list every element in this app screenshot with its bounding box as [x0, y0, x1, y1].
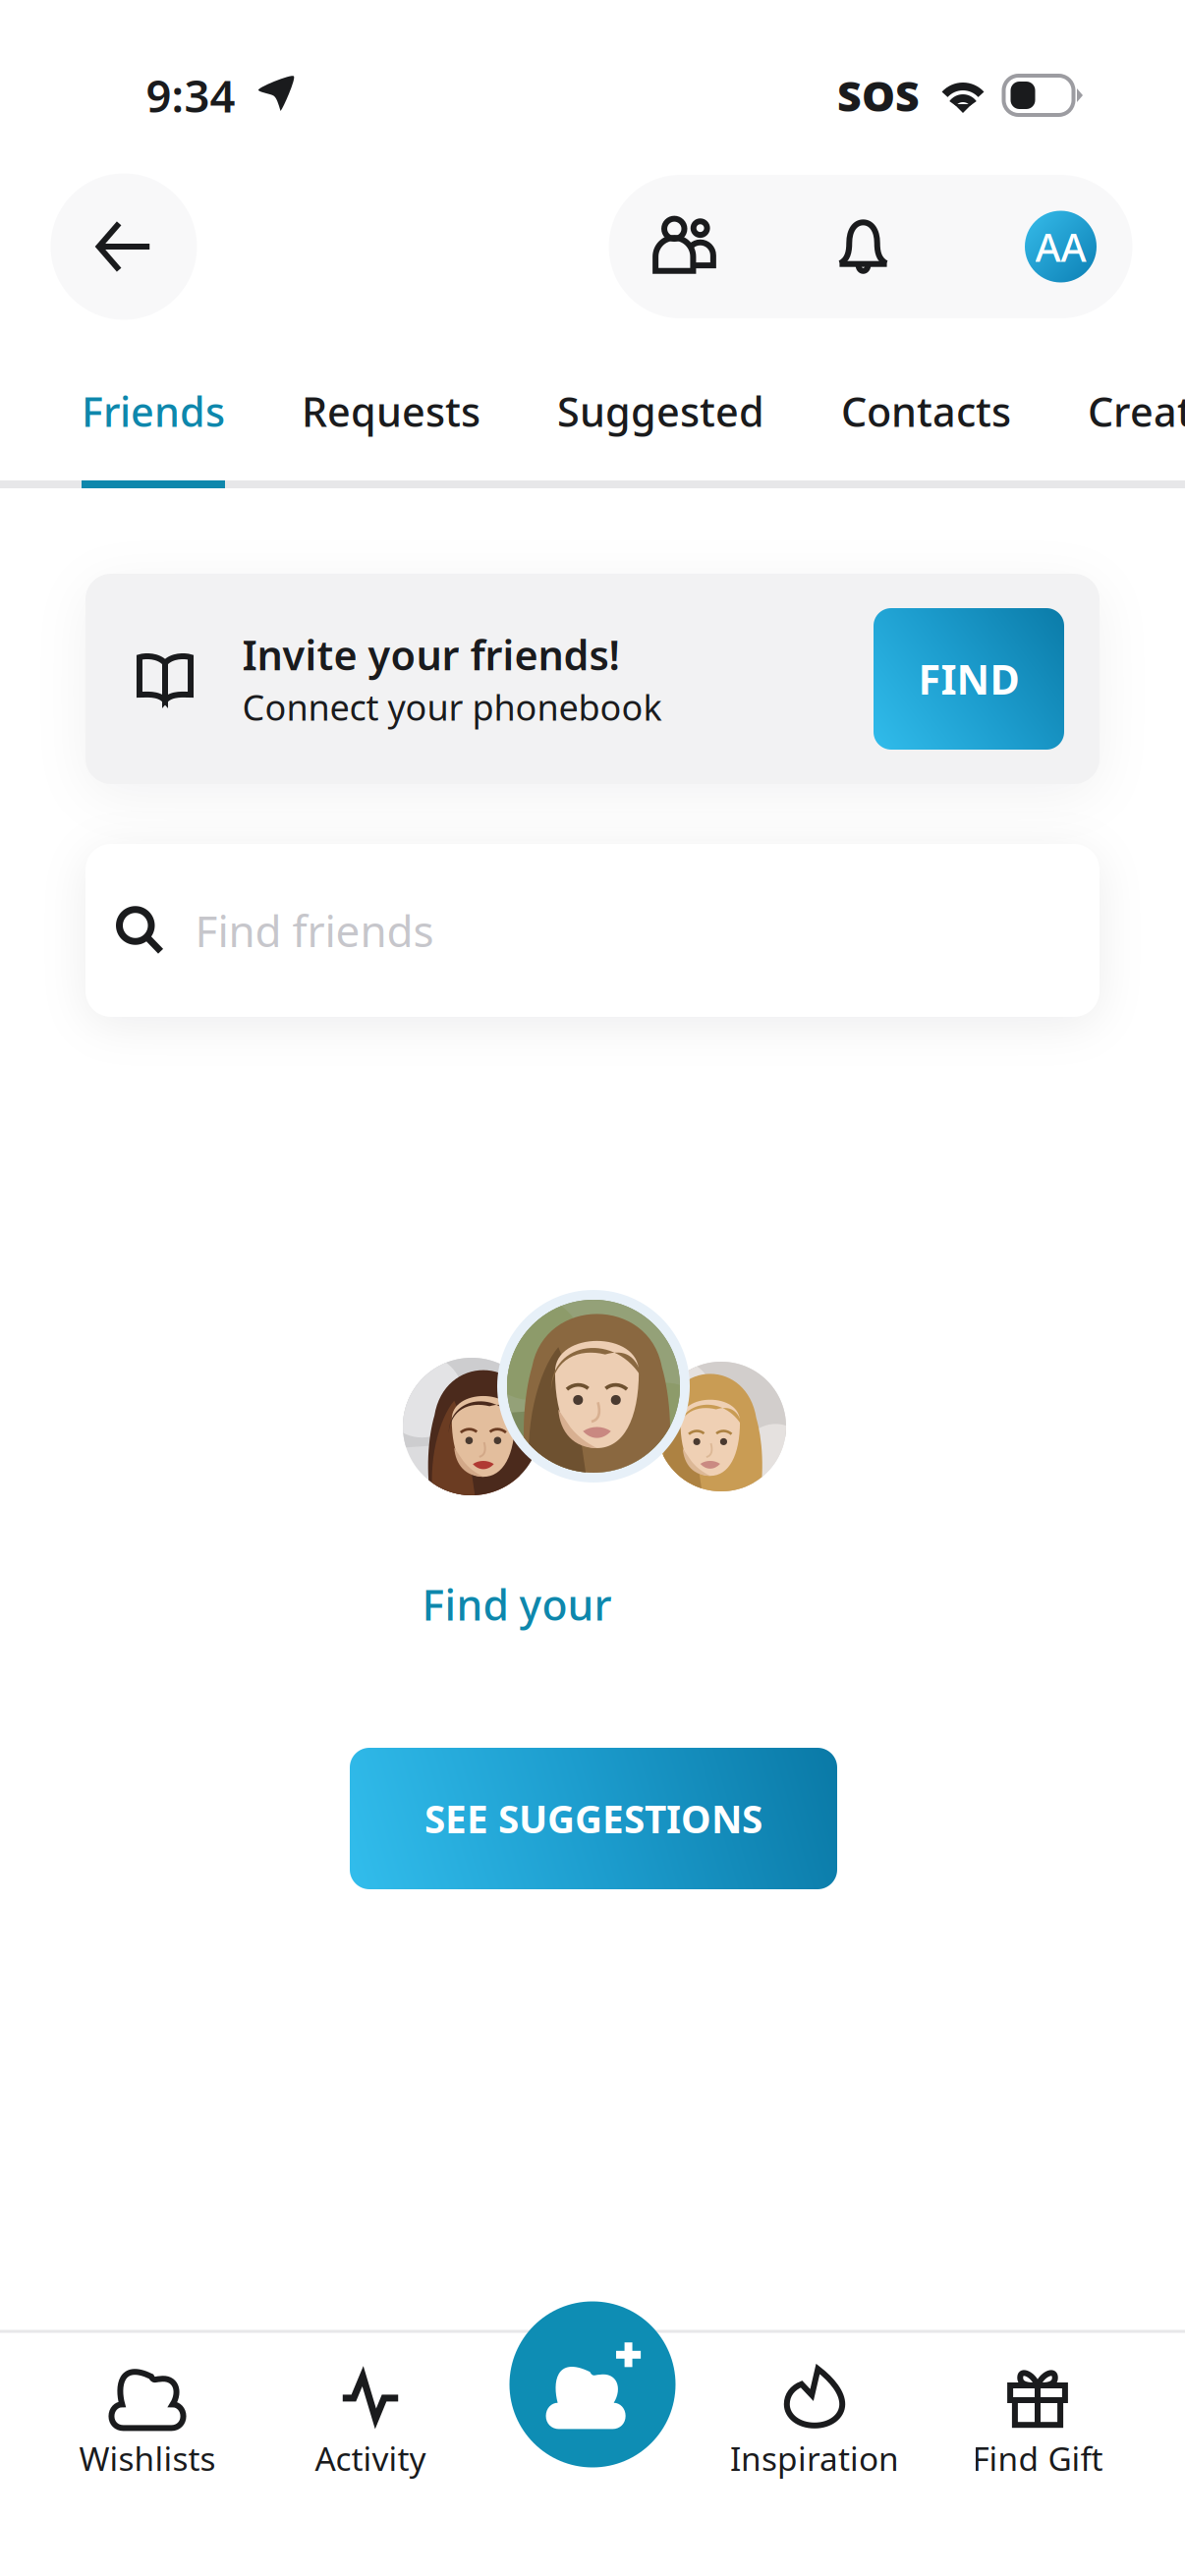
staticText: SEE SUGGESTIONS [424, 1793, 762, 1844]
button[interactable]: Create wish [509, 2301, 676, 2467]
staticText: Find your [422, 1577, 612, 1632]
staticText: Friends [82, 384, 225, 438]
button[interactable]: SEE SUGGESTIONS [350, 1748, 837, 1889]
button[interactable]: Contacts [803, 366, 1049, 488]
staticText: AA [1035, 220, 1086, 273]
button[interactable]: Find Gift [927, 2331, 1149, 2518]
button[interactable]: Notifications [790, 175, 936, 318]
staticText: Create [1088, 384, 1185, 438]
staticText: Activity [315, 2436, 426, 2480]
button[interactable]: Inspiration [704, 2331, 926, 2518]
button[interactable]: Suggested [519, 366, 803, 488]
button[interactable]: Activity [259, 2331, 481, 2518]
staticText: Contacts [841, 384, 1011, 438]
staticText: Find Gift [972, 2436, 1103, 2480]
button[interactable]: Wishlists [36, 2331, 258, 2518]
button[interactable]: Requests [263, 366, 519, 488]
staticText: Find friends [195, 902, 434, 959]
staticText: Invite your friends! [242, 627, 620, 681]
staticText: 9:34 [146, 66, 235, 125]
button[interactable]: Friends [43, 366, 263, 488]
button[interactable]: Find friends [85, 844, 1100, 1017]
staticText: Wishlists [79, 2436, 216, 2480]
staticText: Connect your phonebook [242, 683, 662, 730]
button[interactable]: Create [1049, 366, 1185, 488]
staticText: Inspiration [730, 2436, 899, 2480]
staticText: FIND [918, 652, 1019, 706]
button[interactable]: Profile [1002, 175, 1120, 318]
button[interactable]: Back [51, 173, 197, 320]
button[interactable]: FIND [874, 608, 1064, 750]
button[interactable]: Friends [612, 175, 757, 318]
staticText: Suggested [557, 384, 764, 438]
staticText: SOS [837, 67, 920, 123]
staticText: Requests [302, 384, 480, 438]
